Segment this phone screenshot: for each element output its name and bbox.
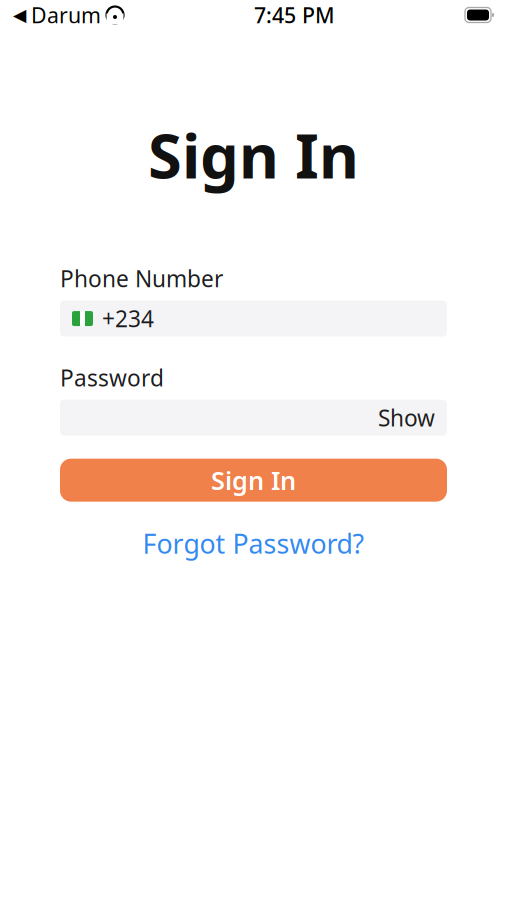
staticText: Password [60,362,164,393]
staticText: Sign In [148,114,359,195]
staticText: 7:45 PM [254,1,335,29]
button[interactable]: Show [374,397,439,439]
staticText: Phone Number [60,263,223,293]
staticText: Darum [31,1,101,29]
staticText: ◀ [13,5,26,25]
button[interactable]: Forgot Password? [132,520,374,567]
staticText: +234 [102,303,154,334]
staticText: Sign In [211,463,296,497]
button[interactable]: Sign In [60,459,447,502]
staticText: Show [378,403,435,433]
staticText: Forgot Password? [142,526,364,561]
